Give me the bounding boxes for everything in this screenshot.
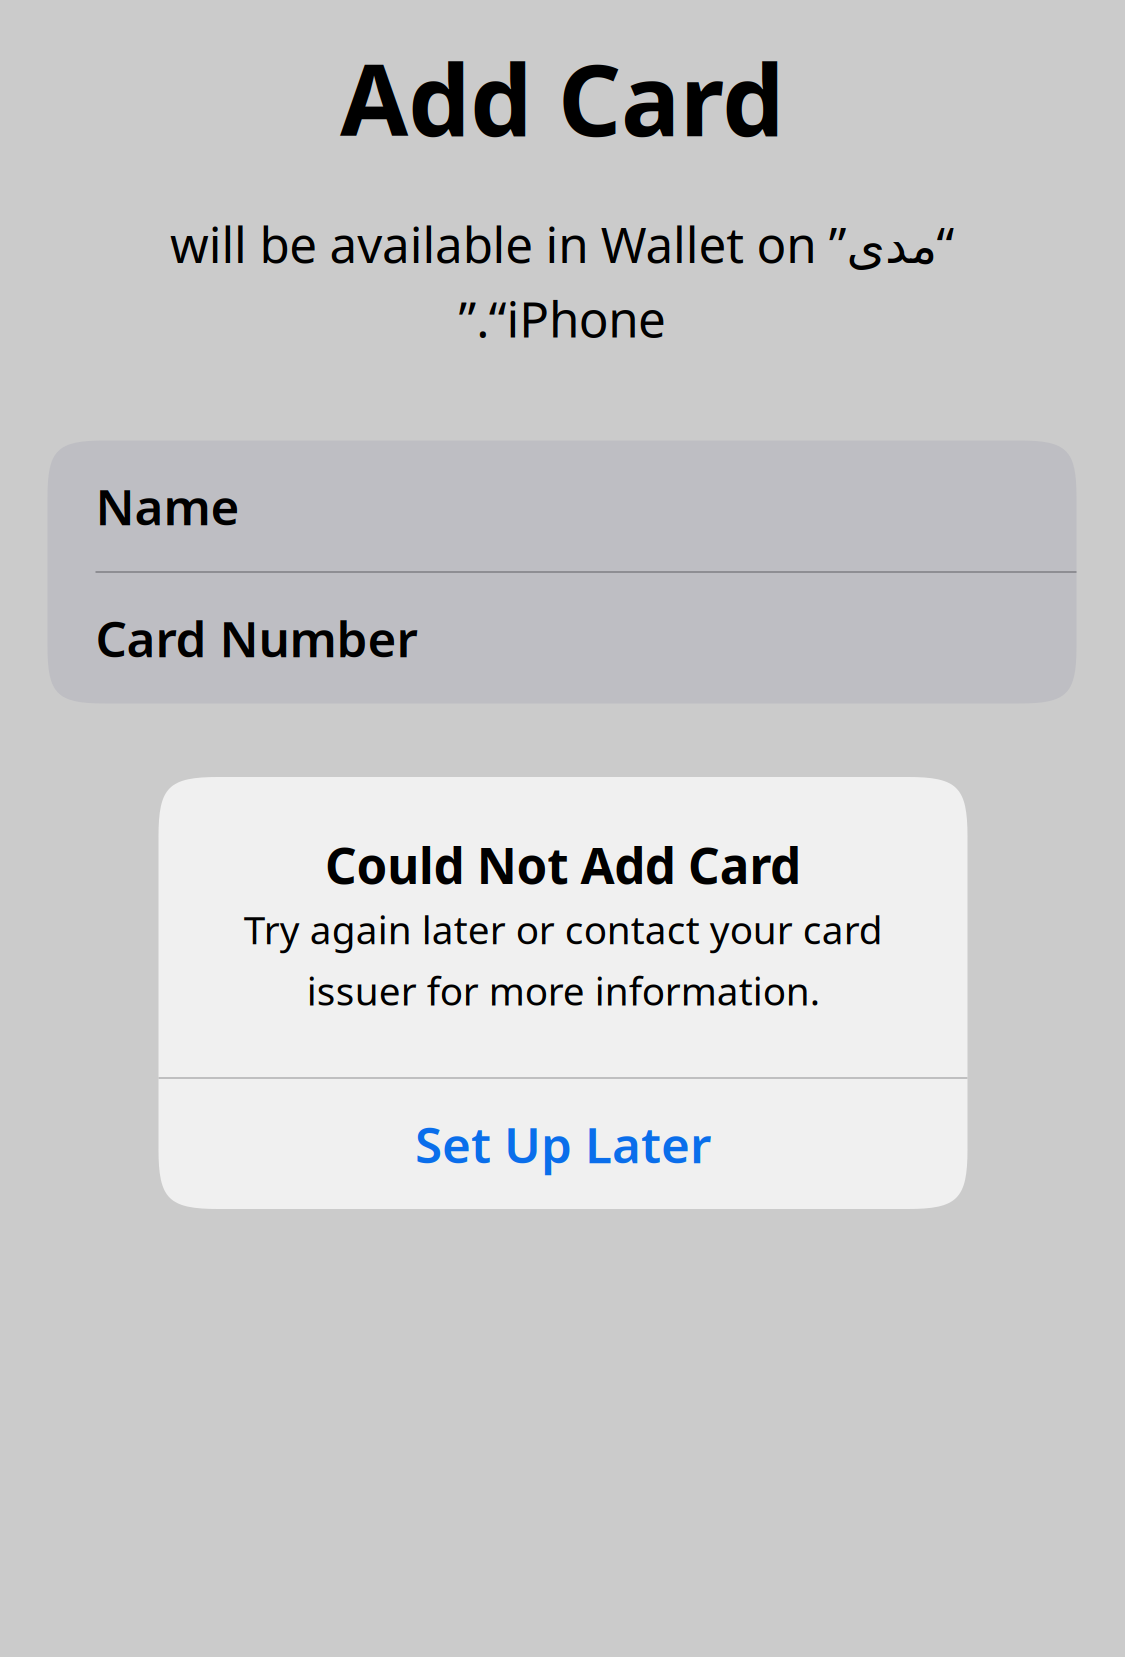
staticText: Set Up Later (415, 1111, 711, 1177)
button[interactable]: Card Number (47, 573, 1076, 703)
staticText: Try again later or contact your card iss… (243, 903, 882, 1016)
staticText: Name (95, 473, 239, 539)
staticText: Card Number (95, 605, 417, 671)
staticText: Add Card (340, 32, 784, 163)
staticText: Could Not Add Card (325, 832, 801, 897)
staticText: “مدى” will be available in Wallet on ”.“… (170, 211, 954, 351)
button[interactable]: Name (47, 441, 1076, 571)
button[interactable]: Set Up Later (158, 1079, 967, 1209)
